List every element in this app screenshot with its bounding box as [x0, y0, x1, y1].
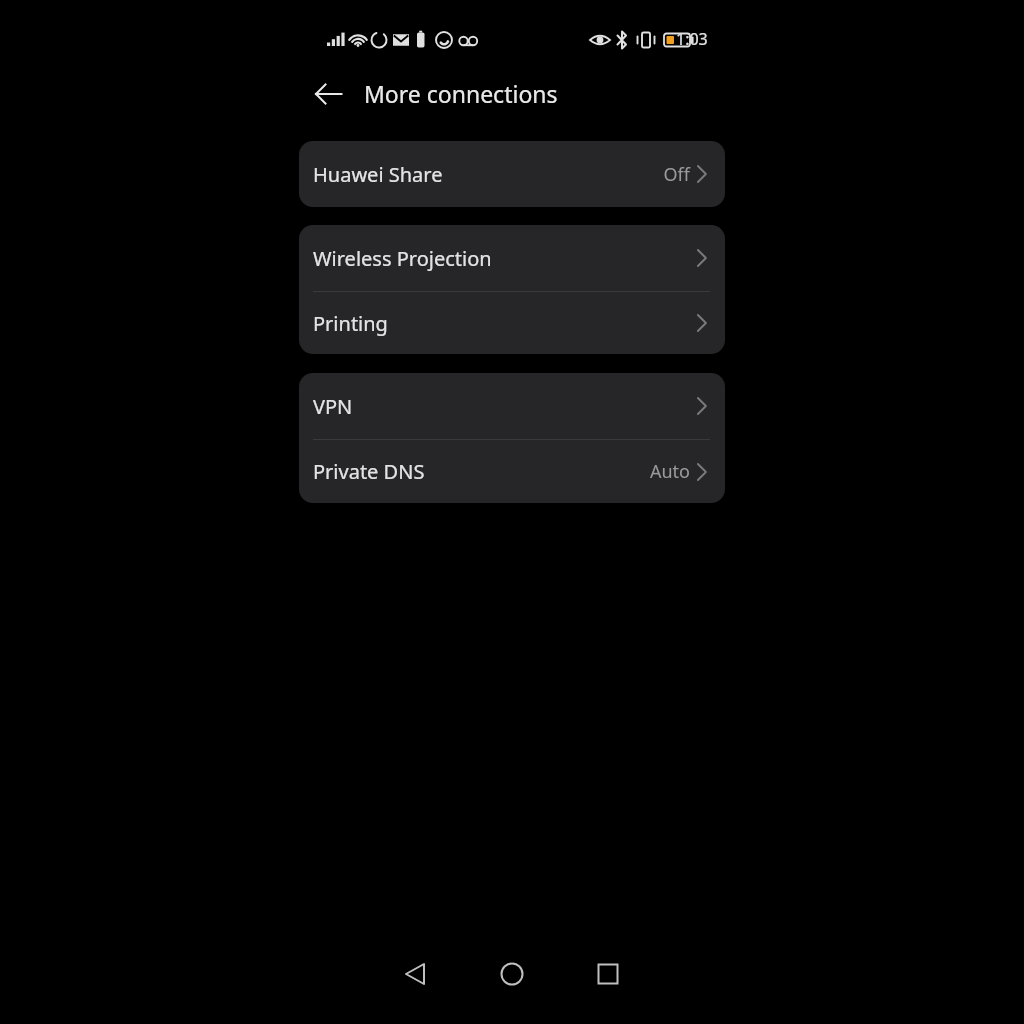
staticText: VPN: [313, 393, 353, 420]
button[interactable]: Recent apps: [584, 950, 632, 998]
staticText: Wireless Projection: [313, 245, 492, 272]
staticText: 1:03: [676, 28, 708, 50]
button[interactable]: VPN: [299, 373, 725, 439]
button[interactable]: Home: [488, 950, 536, 998]
staticText: Printing: [313, 310, 388, 337]
button[interactable]: Back: [391, 950, 439, 998]
button[interactable]: Huawei Share: [299, 141, 725, 207]
staticText: Off: [663, 162, 690, 187]
button[interactable]: Wireless Projection: [299, 225, 725, 291]
staticText: Huawei Share: [313, 161, 443, 188]
button[interactable]: Printing: [299, 292, 725, 354]
staticText: More connections: [364, 78, 558, 109]
staticText: Auto: [649, 459, 690, 484]
button[interactable]: Back: [304, 70, 352, 118]
button[interactable]: Private DNS: [299, 440, 725, 503]
staticText: Private DNS: [313, 458, 425, 485]
